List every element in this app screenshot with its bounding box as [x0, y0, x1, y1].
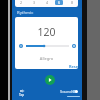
button[interactable]: 2 [17, 0, 25, 5]
staticText: Sound [60, 89, 73, 94]
staticText: Rythmic [17, 10, 34, 16]
staticText: 4 [46, 0, 49, 5]
staticText: 120 [15, 25, 78, 39]
staticText: 6 [58, 0, 61, 5]
button[interactable]: Play [45, 75, 55, 85]
staticText: 2 [20, 0, 23, 5]
staticText: 3 [33, 0, 36, 5]
button[interactable]: 4 [43, 0, 51, 5]
button[interactable]: Decrease tempo [19, 44, 23, 48]
button[interactable]: Tap [14, 86, 30, 100]
staticText: Allegro [15, 56, 78, 61]
button[interactable]: Reset [66, 62, 78, 69]
staticText: 8 [71, 0, 74, 5]
button[interactable]: 3 [30, 0, 38, 5]
button[interactable]: Increase tempo [72, 44, 76, 48]
staticText: Tap [19, 93, 25, 97]
button[interactable]: 8 [68, 0, 76, 5]
staticText: Reset [69, 64, 78, 69]
button[interactable] [26, 43, 69, 49]
button[interactable]: Sound [58, 86, 80, 95]
button[interactable]: 6 [55, 0, 63, 5]
button[interactable]: Rythmic [12, 8, 82, 17]
